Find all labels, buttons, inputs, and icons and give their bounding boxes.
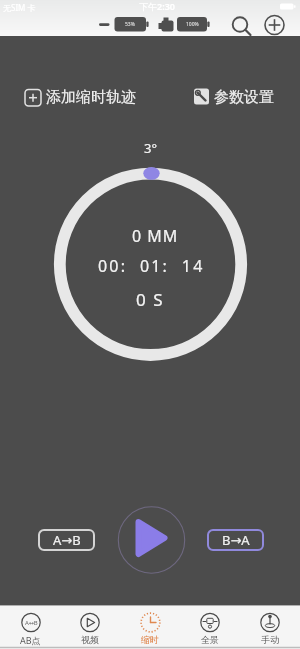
button[interactable] <box>240 606 300 649</box>
button[interactable] <box>0 606 60 649</box>
staticText: 0 S <box>136 288 164 310</box>
staticText: 0 MM <box>132 225 179 245</box>
staticText: 无SIM 卡 <box>3 2 36 13</box>
staticText: B→A <box>222 531 250 549</box>
staticText: 参数设置 <box>214 88 274 107</box>
button[interactable] <box>120 606 180 649</box>
button[interactable] <box>60 606 120 649</box>
staticText: 下午2:30 <box>139 0 175 12</box>
staticText: A↔B <box>25 619 38 627</box>
staticText: A→B <box>53 531 81 549</box>
button[interactable]: 添加缩时轨迹 <box>22 84 147 110</box>
staticText: 手动 <box>261 634 279 645</box>
staticText: AB点 <box>20 634 41 646</box>
staticText: 53% <box>125 21 135 28</box>
staticText: 视频 <box>81 634 99 645</box>
staticText: 全景 <box>201 634 219 645</box>
button[interactable]: B→A <box>207 529 264 551</box>
button[interactable]: 参数设置 <box>191 84 283 110</box>
button[interactable] <box>262 12 288 38</box>
button[interactable] <box>180 606 240 649</box>
staticText: 3° <box>144 139 158 157</box>
button[interactable]: A→B <box>38 529 95 551</box>
staticText: 00: 01: 14 <box>98 255 205 275</box>
staticText: 缩时 <box>141 634 159 645</box>
staticText: 100% <box>186 21 199 28</box>
button[interactable] <box>118 507 184 573</box>
staticText: 添加缩时轨迹 <box>46 88 136 107</box>
button[interactable] <box>228 12 254 38</box>
